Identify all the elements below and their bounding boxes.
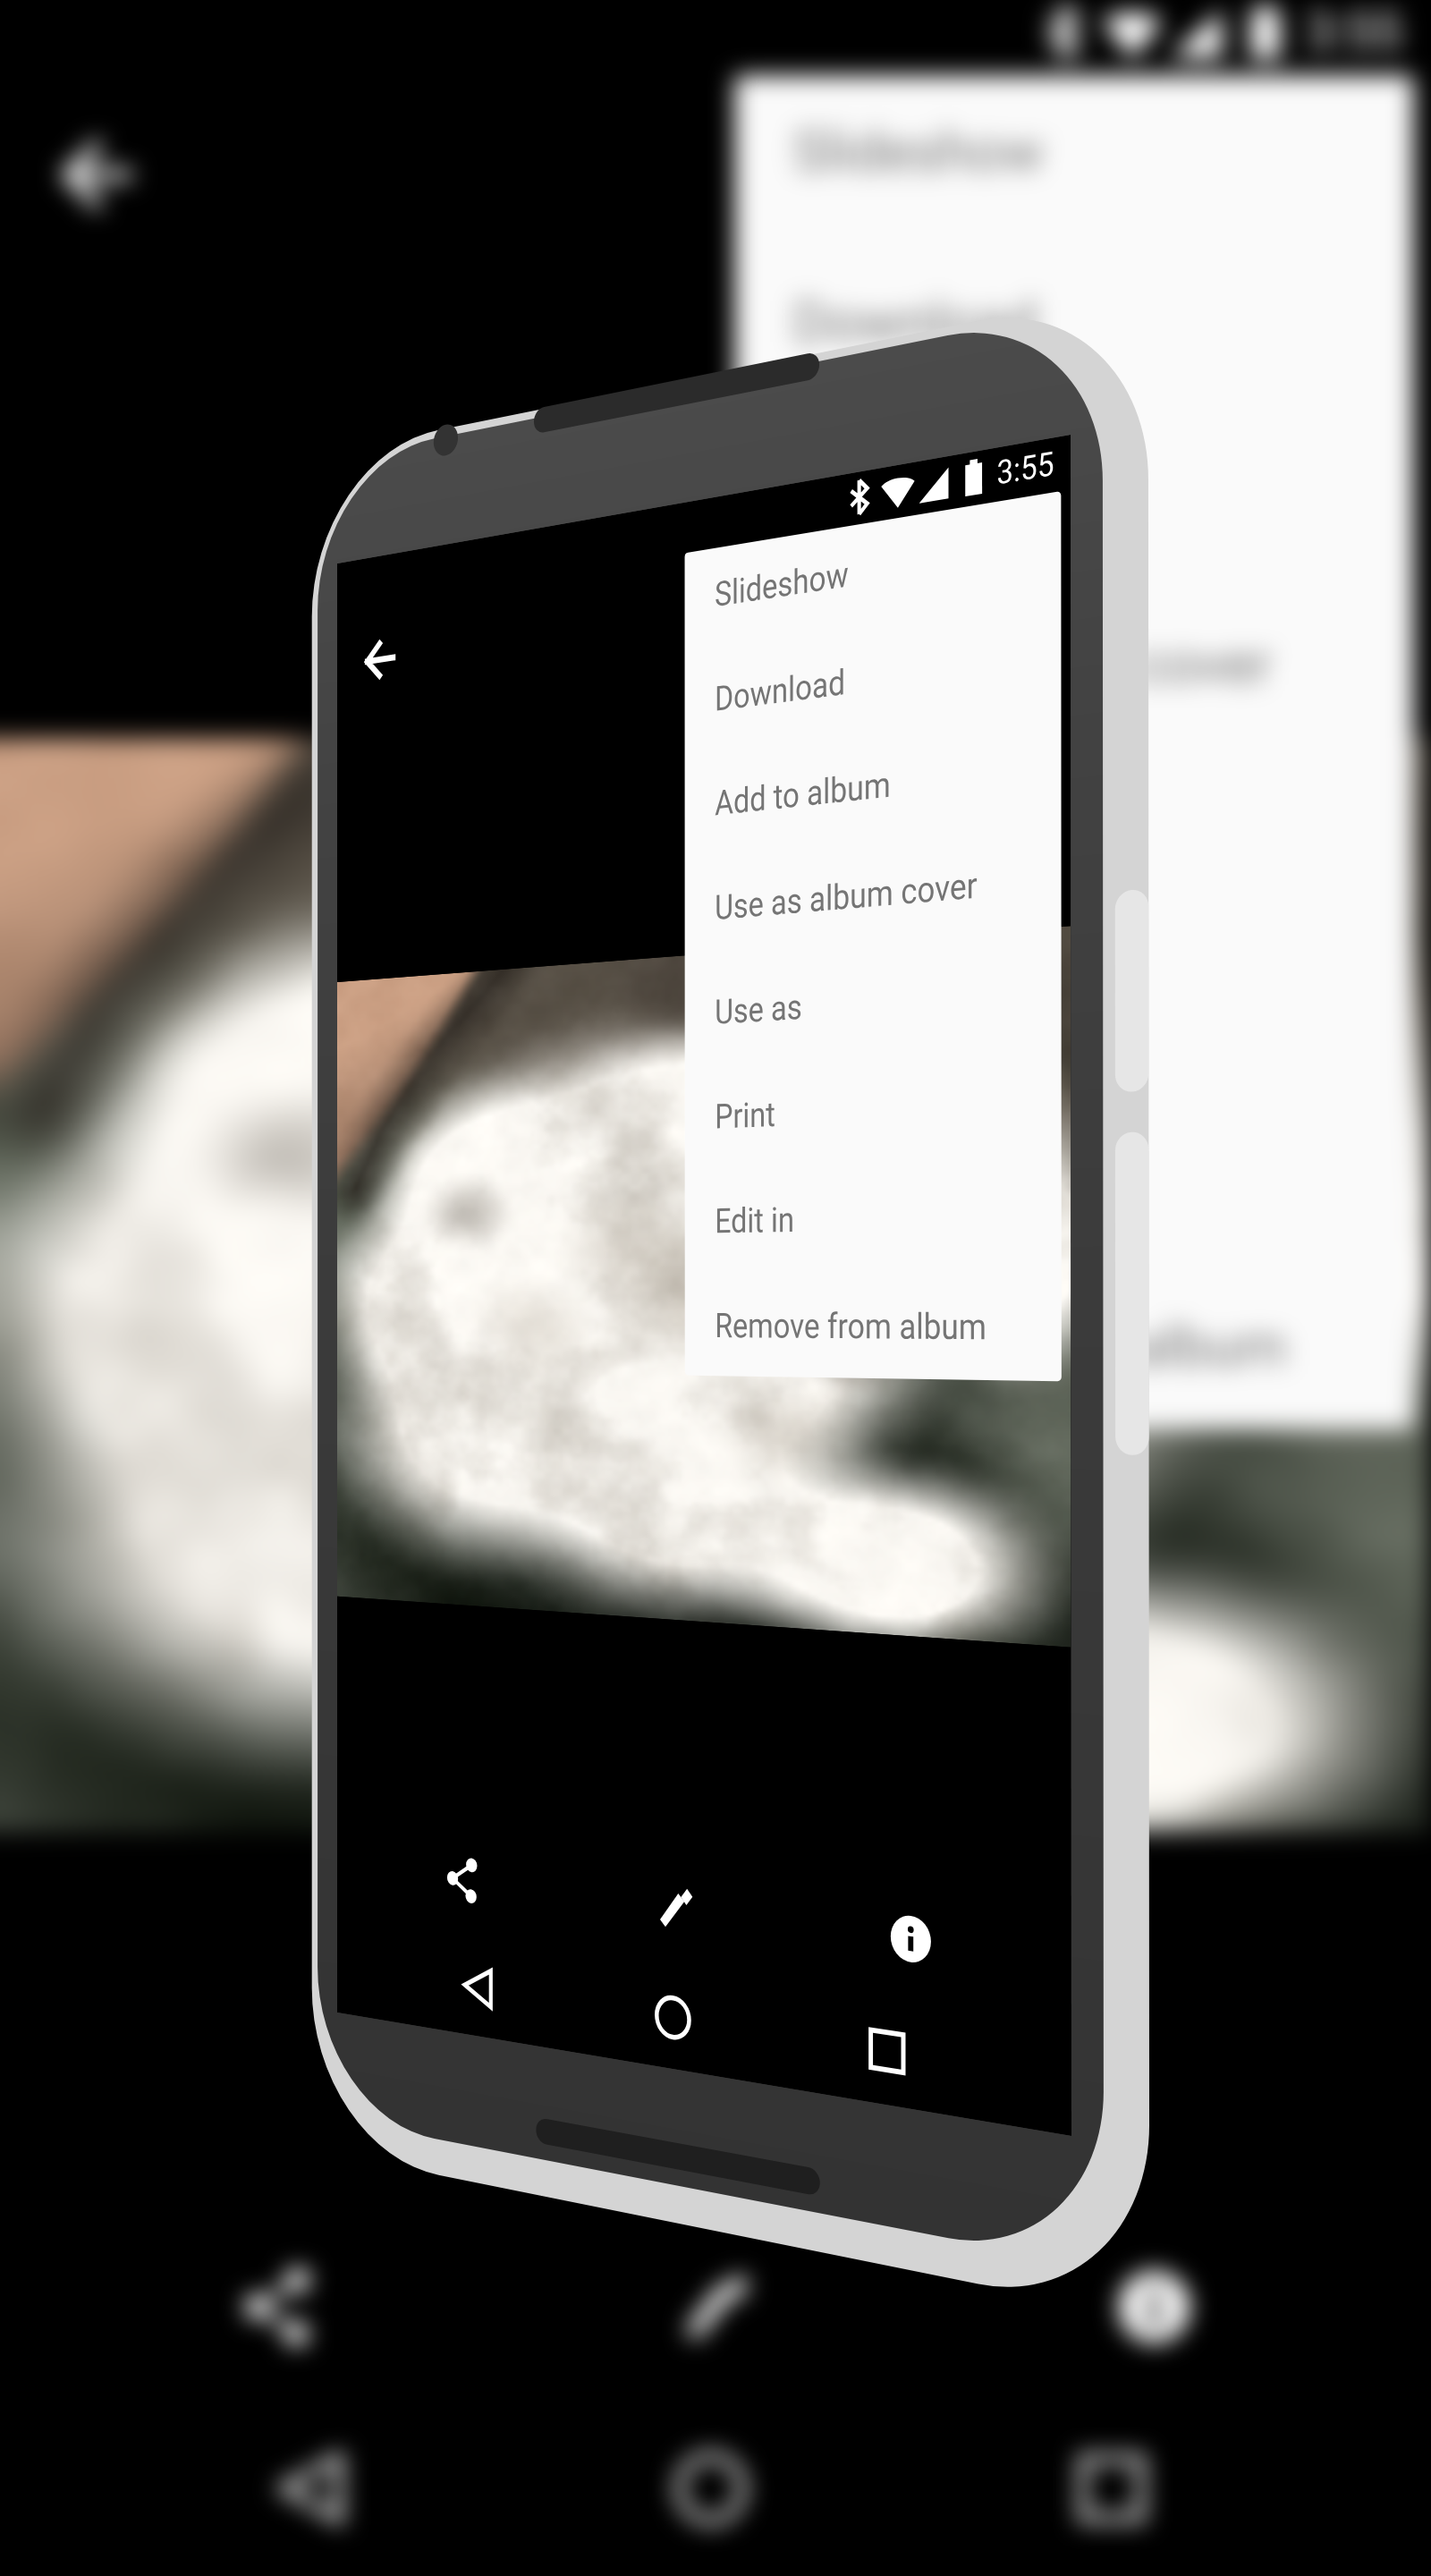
button[interactable]: Share	[419, 1818, 507, 1942]
button[interactable]: Navigate back	[435, 1925, 521, 2051]
button[interactable]: Edit	[627, 1843, 724, 1974]
button[interactable]: Use as	[685, 955, 1062, 1063]
button[interactable]: Slideshow	[685, 522, 1062, 631]
button[interactable]: Edit in	[685, 1172, 1062, 1280]
button[interactable]: Use as album cover	[685, 847, 1062, 955]
button[interactable]: Remove from album	[685, 1280, 1062, 1388]
button[interactable]: Home	[626, 1952, 721, 2084]
button[interactable]: Download	[685, 631, 1062, 739]
button[interactable]: Details	[858, 1871, 965, 2009]
button[interactable]: Print	[685, 1063, 1062, 1172]
button[interactable]: Recent apps	[835, 1982, 939, 2122]
button[interactable]: Add to album	[685, 739, 1062, 847]
button[interactable]: Back	[343, 605, 419, 714]
